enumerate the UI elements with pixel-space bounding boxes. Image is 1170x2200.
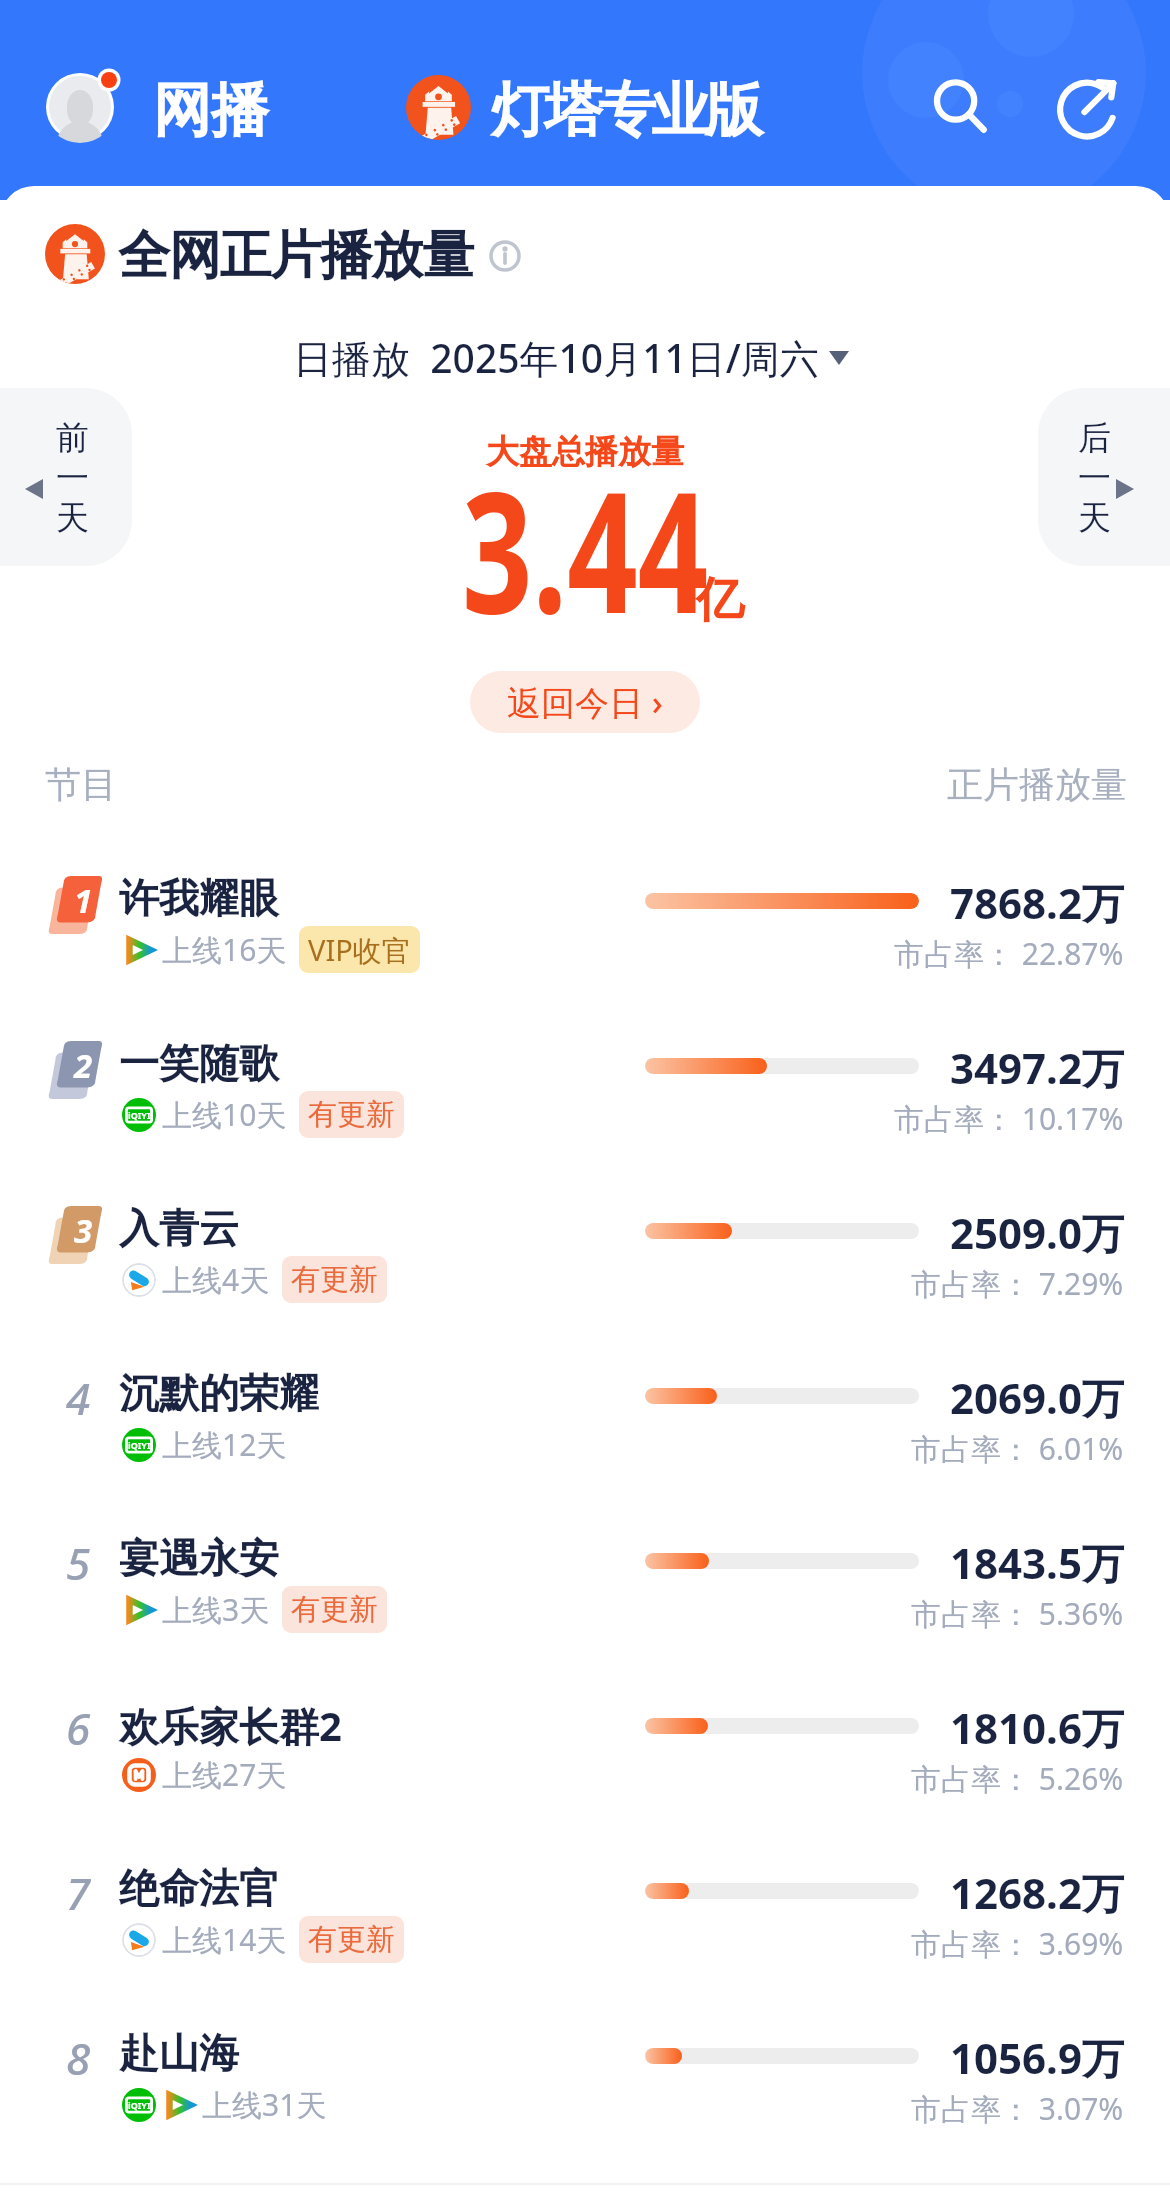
button[interactable]: 网播: [153, 74, 269, 147]
staticText: 3497.2万: [950, 1039, 1124, 1096]
staticText: 上线10天: [162, 1094, 287, 1135]
button[interactable]: [0, 1817, 1170, 1967]
staticText: 1268.2万: [950, 1864, 1124, 1921]
staticText: 3: [74, 1208, 93, 1253]
staticText: 市占率： 10.17%: [894, 1098, 1124, 1139]
staticText: 7: [66, 1863, 91, 1917]
button[interactable]: 后: [1038, 388, 1170, 566]
staticText: 1056.9万: [950, 2029, 1124, 2086]
staticText: 节目: [45, 762, 117, 807]
staticText: 大盘总播放量: [486, 431, 684, 473]
staticText: 2: [74, 1043, 93, 1088]
staticText: 天: [1078, 497, 1111, 539]
staticText: 正片播放量: [947, 762, 1127, 807]
button[interactable]: [0, 1982, 1170, 2132]
staticText: 市占率： 5.36%: [911, 1593, 1124, 1634]
staticText: 7868.2万: [950, 874, 1124, 931]
staticText: 有更新: [291, 1591, 378, 1628]
staticText: 返回今日 ›: [507, 679, 663, 725]
staticText: 上线31天: [202, 2084, 327, 2125]
button[interactable]: [0, 1487, 1170, 1637]
staticText: 市占率： 3.69%: [911, 1923, 1124, 1964]
button[interactable]: [0, 1157, 1170, 1307]
staticText: 入青云: [119, 1203, 239, 1253]
staticText: 有更新: [308, 1921, 395, 1958]
button[interactable]: [0, 992, 1170, 1142]
staticText: 市占率： 22.87%: [894, 933, 1124, 974]
staticText: 一笑随歌: [119, 1038, 279, 1088]
staticText: 3.44: [462, 435, 708, 662]
staticText: 市占率： 7.29%: [911, 1263, 1124, 1304]
staticText: 市占率： 6.01%: [911, 1428, 1124, 1469]
button[interactable]: 日播放 2025年10月11日/周六: [293, 331, 849, 384]
staticText: VIP收官: [308, 930, 411, 970]
button[interactable]: [0, 1652, 1170, 1802]
staticText: 亿: [696, 570, 744, 630]
staticText: 4: [66, 1368, 91, 1422]
staticText: 上线27天: [162, 1754, 287, 1795]
staticText: 赴山海: [119, 2028, 239, 2078]
button[interactable]: [0, 827, 1170, 977]
staticText: 1: [74, 878, 93, 923]
staticText: 有更新: [308, 1096, 395, 1133]
button[interactable]: 前: [0, 388, 132, 566]
staticText: 上线14天: [162, 1919, 287, 1960]
staticText: iQIYI: [128, 1439, 151, 1451]
staticText: iQIYI: [128, 2099, 151, 2111]
staticText: 沉默的荣耀: [119, 1368, 319, 1418]
button[interactable]: Share: [1048, 68, 1126, 146]
staticText: 欢乐家长群2: [119, 1698, 342, 1753]
staticText: 5: [66, 1533, 91, 1587]
staticText: 许我耀眼: [119, 873, 279, 923]
staticText: 1843.5万: [950, 1534, 1124, 1591]
staticText: 市占率： 3.07%: [911, 2088, 1124, 2129]
button[interactable]: Profile: [44, 71, 116, 143]
staticText: 市占率： 5.26%: [911, 1758, 1124, 1799]
staticText: 上线12天: [162, 1424, 287, 1465]
staticText: 2069.0万: [950, 1369, 1124, 1426]
staticText: 一: [1078, 457, 1111, 499]
staticText: 全网正片播放量: [118, 223, 473, 289]
staticText: 后: [1078, 417, 1111, 459]
staticText: 绝命法官: [119, 1863, 279, 1913]
staticText: 有更新: [291, 1261, 378, 1298]
staticText: 6: [66, 1698, 91, 1752]
staticText: iQIYI: [128, 1109, 151, 1121]
staticText: 1810.6万: [950, 1699, 1124, 1756]
staticText: 一: [56, 457, 89, 499]
staticText: 宴遇永安: [119, 1533, 279, 1583]
staticText: 上线4天: [162, 1259, 270, 1300]
button[interactable]: 返回今日 ›: [470, 671, 700, 733]
staticText: 前: [56, 417, 89, 459]
staticText: 上线3天: [162, 1589, 270, 1630]
staticText: 8: [66, 2028, 91, 2082]
staticText: 天: [56, 497, 89, 539]
button[interactable]: Search: [922, 68, 1000, 146]
staticText: 日播放 2025年10月11日/周六: [293, 331, 819, 384]
button[interactable]: 灯塔专业版: [491, 74, 759, 147]
button[interactable]: [0, 1322, 1170, 1472]
staticText: 上线16天: [162, 929, 287, 970]
staticText: 2509.0万: [950, 1204, 1124, 1261]
